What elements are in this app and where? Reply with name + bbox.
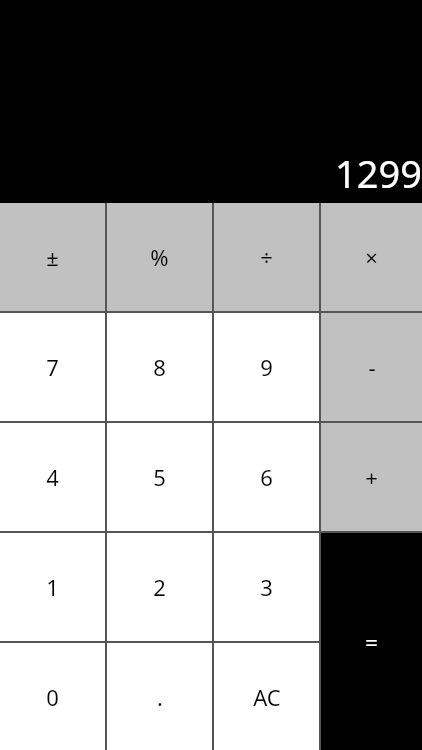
staticText: = bbox=[365, 627, 378, 657]
staticText: 9 bbox=[260, 352, 273, 382]
staticText: × bbox=[365, 242, 378, 272]
button[interactable]: Divide bbox=[214, 203, 319, 311]
button[interactable]: AC bbox=[214, 643, 319, 750]
staticText: 0 bbox=[46, 682, 59, 712]
button[interactable]: 1 bbox=[0, 533, 105, 641]
staticText: 6 bbox=[260, 462, 273, 492]
staticText: 4 bbox=[46, 462, 59, 492]
button[interactable]: Percent bbox=[107, 203, 212, 311]
button[interactable]: Plus bbox=[321, 423, 422, 531]
staticText: 7 bbox=[46, 352, 59, 382]
button[interactable]: 0 bbox=[0, 643, 105, 750]
button[interactable]: . bbox=[107, 643, 212, 750]
button[interactable]: 6 bbox=[214, 423, 319, 531]
staticText: ÷ bbox=[260, 242, 273, 272]
staticText: 3 bbox=[260, 572, 273, 602]
staticText: 8 bbox=[153, 352, 166, 382]
button[interactable]: Equals bbox=[321, 533, 422, 750]
button[interactable]: Minus bbox=[321, 313, 422, 421]
staticText: . bbox=[157, 682, 163, 712]
staticText: % bbox=[150, 242, 169, 272]
button[interactable]: 8 bbox=[107, 313, 212, 421]
button[interactable]: 4 bbox=[0, 423, 105, 531]
button[interactable]: 9 bbox=[214, 313, 319, 421]
button[interactable]: Multiply bbox=[321, 203, 422, 311]
button[interactable]: 7 bbox=[0, 313, 105, 421]
staticText: 2 bbox=[153, 572, 166, 602]
staticText: + bbox=[365, 462, 378, 492]
staticText: - bbox=[368, 352, 376, 382]
staticText: AC bbox=[253, 682, 281, 712]
button[interactable]: Plus minus bbox=[0, 203, 105, 311]
staticText: 1299 bbox=[335, 147, 422, 199]
staticText: 5 bbox=[153, 462, 166, 492]
button[interactable]: 3 bbox=[214, 533, 319, 641]
staticText: ± bbox=[46, 242, 59, 272]
button[interactable]: 2 bbox=[107, 533, 212, 641]
staticText: 1 bbox=[46, 572, 59, 602]
button[interactable]: 5 bbox=[107, 423, 212, 531]
